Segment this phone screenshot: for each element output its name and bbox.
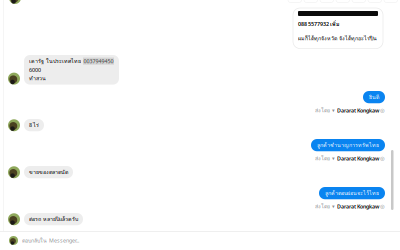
staticText: ต่อรถ หลายปีแล้วครับ <box>29 215 78 223</box>
button[interactable]: 088 5577932 เพิ่ม <box>293 8 383 48</box>
staticText: 6000 <box>29 66 41 73</box>
staticText: ◎ <box>380 107 385 113</box>
button[interactable]: ลูกค้าตอบผ่อนจะไว้ไทย <box>319 187 385 199</box>
staticText: ยินดี <box>369 93 379 101</box>
staticText: ผมก็ได้ทุกจังหวัด จังได้ทุกอะไรปืน <box>298 34 377 43</box>
staticText: ส่งโดย ▾ <box>315 202 337 211</box>
button[interactable]: ขายของตลาดนัด <box>8 166 73 178</box>
button[interactable]: ยินดี <box>363 91 385 103</box>
staticText: 8 ไร่ <box>29 121 39 129</box>
staticText: ◎ <box>380 155 385 161</box>
button[interactable]: เคารัฐ ในประเทศไทย <box>8 55 119 85</box>
button[interactable]: ต่อรถ หลายปีแล้วครับ <box>8 213 83 225</box>
staticText: ส่งโดย ▾ <box>315 106 337 115</box>
staticText: ขายของตลาดนัด <box>29 168 68 176</box>
staticText: ทำสวน <box>29 74 46 83</box>
button[interactable]: ตอบกลับใน Messenger... <box>0 231 400 250</box>
staticText: 088 5577932 เพิ่ม <box>298 20 340 28</box>
staticText: เคารัฐ ในประเทศไทย <box>29 57 83 65</box>
staticText: ลูกค้าชำนาญการทรัพไทย <box>317 141 379 149</box>
button[interactable]: 8 ไร่ <box>8 119 44 131</box>
staticText: Dararat Kongkaw <box>337 107 380 114</box>
staticText: ◎ <box>380 203 385 209</box>
staticText: 0037949450 <box>83 58 113 65</box>
staticText: ส่งโดย ▾ <box>315 154 337 163</box>
staticText: Dararat Kongkaw <box>337 155 380 162</box>
staticText: Dararat Kongkaw <box>337 203 380 210</box>
staticText: ตอบกลับใน Messenger... <box>22 236 79 245</box>
button[interactable]: ลูกค้าชำนาญการทรัพไทย <box>311 139 385 151</box>
staticText: ลูกค้าตอบผ่อนจะไว้ไทย <box>325 189 379 197</box>
